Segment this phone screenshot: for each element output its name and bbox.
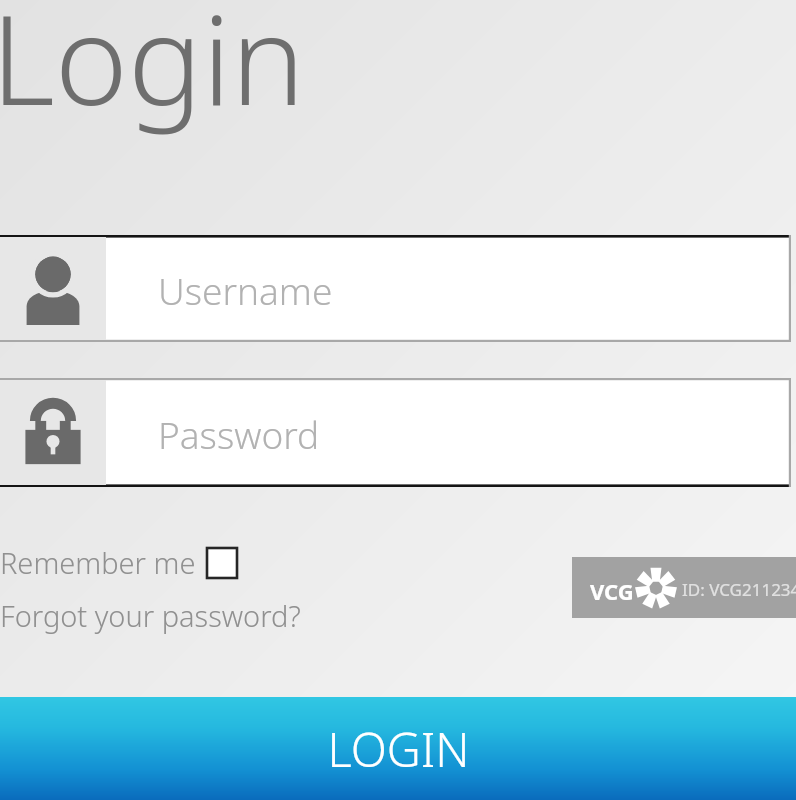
staticText: Login	[0, 0, 305, 141]
button[interactable]: Password field	[0, 378, 791, 487]
staticText: Username	[158, 265, 333, 315]
button[interactable]: Remember me	[0, 540, 243, 585]
button[interactable]: LOGIN	[0, 697, 796, 800]
staticText: LOGIN	[327, 717, 470, 781]
staticText: Remember me	[0, 543, 196, 582]
staticText: Forgot your password?	[0, 596, 301, 635]
button[interactable]: Username field	[0, 235, 791, 342]
button[interactable]: Forgot your password?	[0, 594, 307, 637]
staticText: VCG	[590, 576, 634, 606]
staticText: ID: VCG211234725605	[682, 578, 796, 601]
staticText: Password	[158, 409, 320, 459]
